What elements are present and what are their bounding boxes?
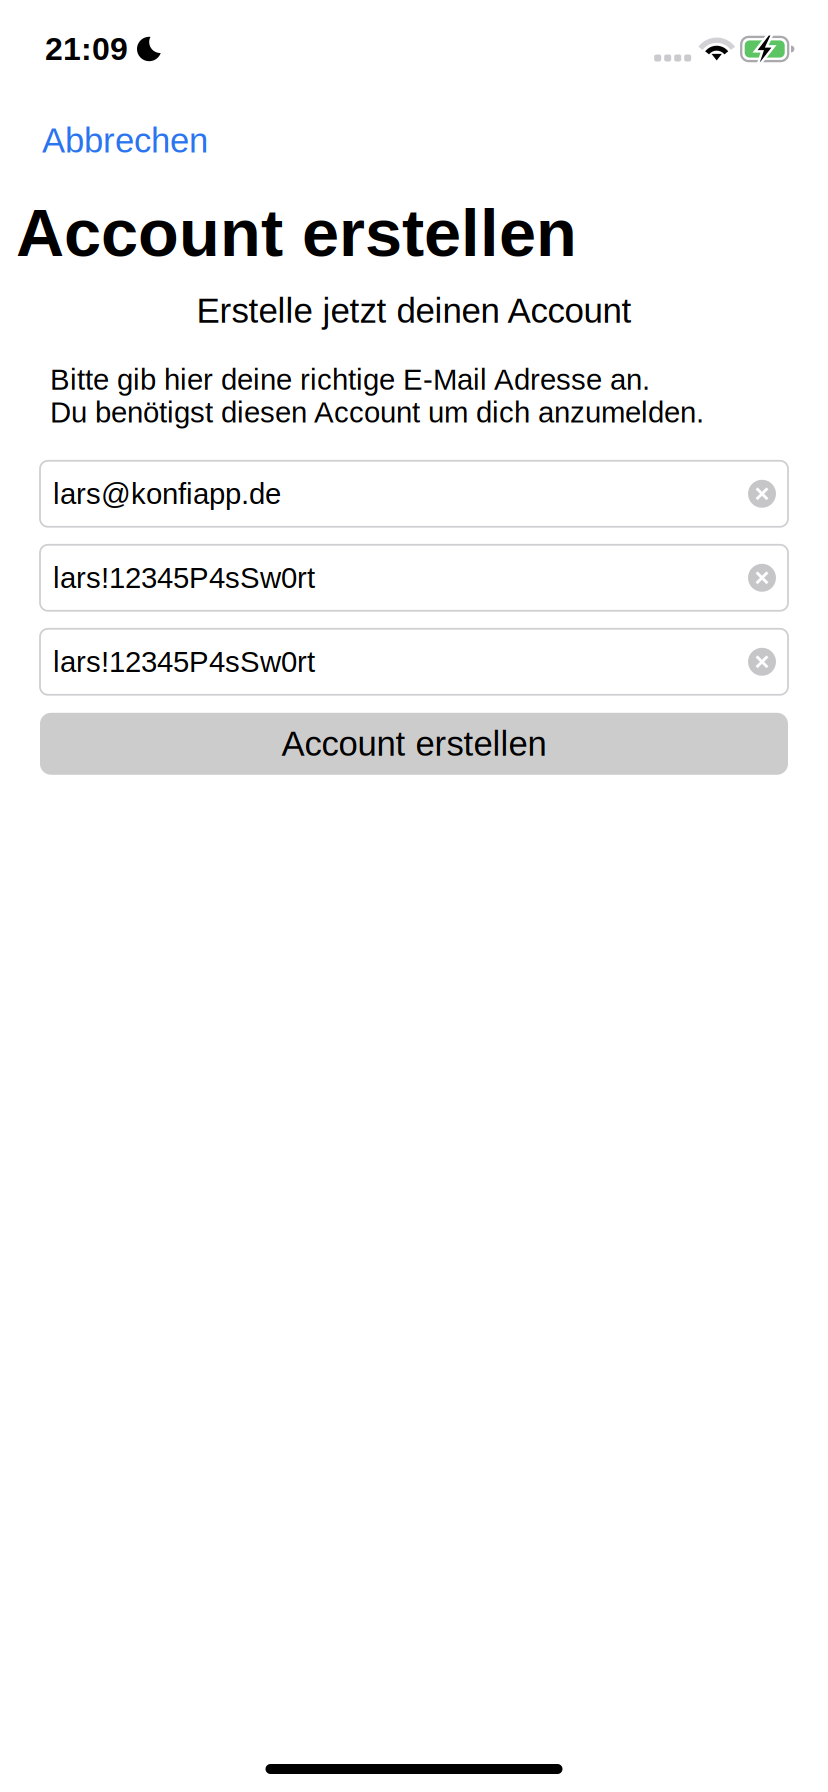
- staticText: Account erstellen: [16, 196, 577, 270]
- button[interactable]: lars@konfiapp.de: [40, 461, 788, 527]
- staticText: lars!12345P4sSw0rt: [53, 561, 315, 594]
- button[interactable]: lars!12345P4sSw0rt: [40, 545, 788, 611]
- staticText: Du benötigst diesen Account um dich anzu…: [50, 396, 704, 429]
- button[interactable]: Eingabe löschen: [736, 461, 788, 527]
- staticText: lars@konfiapp.de: [53, 477, 281, 510]
- staticText: Bitte gib hier deine richtige E-Mail Adr…: [50, 363, 650, 396]
- button[interactable]: Eingabe löschen: [736, 629, 788, 695]
- staticText: Erstelle jetzt deinen Account: [196, 291, 631, 330]
- staticText: Account erstellen: [281, 724, 546, 763]
- button[interactable]: Abbrechen: [0, 109, 232, 172]
- button[interactable]: Account erstellen: [40, 713, 788, 775]
- staticText: 21:09: [45, 31, 128, 67]
- staticText: Abbrechen: [42, 121, 208, 160]
- button[interactable]: Eingabe löschen: [736, 545, 788, 611]
- button[interactable]: lars!12345P4sSw0rt: [40, 629, 788, 695]
- staticText: lars!12345P4sSw0rt: [53, 645, 315, 678]
